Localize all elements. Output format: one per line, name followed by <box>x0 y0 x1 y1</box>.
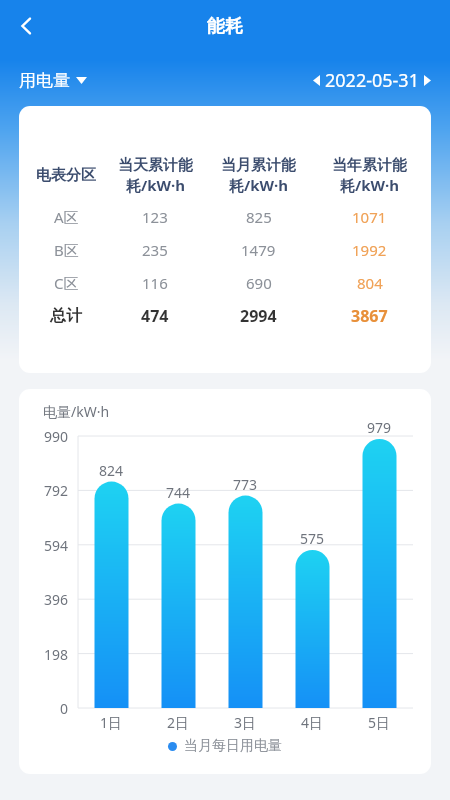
staticText: 979 <box>367 418 392 437</box>
button[interactable]: C区 <box>25 266 425 299</box>
button[interactable]: A区 <box>25 200 425 233</box>
staticText: 耗/kW·h <box>340 175 399 195</box>
staticText: 用电量 <box>19 70 70 91</box>
staticText: 198 <box>44 645 69 664</box>
staticText: 电量/kW·h <box>43 402 110 421</box>
staticText: 594 <box>44 536 69 555</box>
staticText: 3日 <box>234 713 257 732</box>
staticText: 396 <box>44 590 69 609</box>
staticText: A区 <box>54 207 79 227</box>
button[interactable]: Back <box>4 4 48 48</box>
staticText: 116 <box>142 273 168 293</box>
staticText: 474 <box>141 305 169 327</box>
staticText: 804 <box>357 273 383 293</box>
staticText: 1479 <box>241 240 276 260</box>
staticText: 当年累计能 <box>332 156 407 175</box>
staticText: 0 <box>60 699 69 718</box>
staticText: 当天累计能 <box>118 156 193 175</box>
staticText: 能耗 <box>207 15 243 38</box>
staticText: 耗/kW·h <box>126 175 185 195</box>
staticText: 2022-05-31 <box>325 68 419 93</box>
button[interactable]: B区 <box>25 233 425 266</box>
staticText: 123 <box>142 207 168 227</box>
staticText: 824 <box>99 461 124 480</box>
button[interactable]: 总计 <box>25 299 425 332</box>
button[interactable]: Next day <box>419 72 436 89</box>
staticText: 1992 <box>352 240 387 260</box>
button[interactable]: 当月每日用电量 <box>168 737 282 755</box>
button[interactable]: 用电量 <box>17 68 89 93</box>
staticText: 825 <box>246 207 272 227</box>
staticText: 4日 <box>301 713 324 732</box>
staticText: 575 <box>300 529 325 548</box>
staticText: 690 <box>246 273 272 293</box>
button[interactable]: Previous day <box>308 72 325 89</box>
staticText: 2994 <box>240 305 277 327</box>
staticText: 电表分区 <box>36 166 96 185</box>
staticText: 耗/kW·h <box>229 175 288 195</box>
staticText: 当月每日用电量 <box>184 737 282 755</box>
staticText: 1日 <box>100 713 123 732</box>
staticText: 792 <box>44 481 69 500</box>
staticText: B区 <box>54 240 79 260</box>
staticText: 990 <box>44 427 69 446</box>
staticText: 2日 <box>167 713 190 732</box>
staticText: 总计 <box>50 306 82 326</box>
staticText: 1071 <box>352 207 387 227</box>
staticText: 当月累计能 <box>221 156 296 175</box>
staticText: 5日 <box>368 713 391 732</box>
staticText: 235 <box>142 240 168 260</box>
staticText: 773 <box>233 475 258 494</box>
staticText: 744 <box>166 483 191 502</box>
staticText: C区 <box>54 273 79 293</box>
staticText: 3867 <box>351 305 388 327</box>
